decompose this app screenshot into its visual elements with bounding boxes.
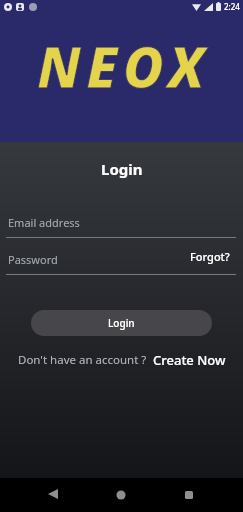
staticText: NEOX: [37, 28, 210, 104]
button[interactable]: Don't have an account ?: [18, 351, 226, 369]
staticText: Password: [8, 252, 58, 267]
staticText: Email address: [8, 215, 80, 230]
staticText: Login: [101, 159, 143, 179]
staticText: NEOX: [37, 28, 210, 104]
button[interactable]: Email address: [6, 212, 236, 238]
button[interactable]: Login: [31, 310, 212, 336]
staticText: Create Now: [153, 351, 226, 369]
button[interactable]: Forgot?: [190, 249, 230, 264]
button[interactable]: [182, 488, 196, 502]
staticText: 2:24: [224, 1, 240, 12]
staticText: Login: [108, 316, 135, 330]
staticText: Don't have an account ?: [18, 352, 153, 368]
button[interactable]: Password: [6, 249, 236, 275]
button[interactable]: [47, 488, 59, 500]
button[interactable]: [114, 488, 128, 502]
